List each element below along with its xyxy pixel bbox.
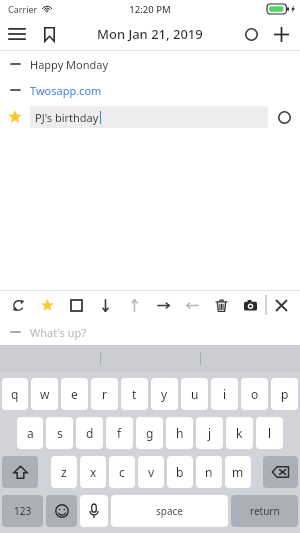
button[interactable]: Emoji <box>46 495 77 527</box>
button[interactable]: o <box>241 378 268 410</box>
button[interactable]: Happy Monday <box>0 51 300 77</box>
button[interactable]: l <box>256 417 283 449</box>
button[interactable]: x <box>80 456 106 488</box>
button[interactable]: c <box>109 456 135 488</box>
staticText: return <box>250 504 280 518</box>
staticText: q <box>11 386 19 402</box>
button[interactable]: Outdent <box>178 291 207 319</box>
staticText: l <box>268 425 272 441</box>
staticText: space <box>156 504 183 518</box>
button[interactable]: Move down <box>91 291 120 319</box>
staticText: PJ's birthday <box>35 110 99 125</box>
staticText: n <box>205 464 213 480</box>
button[interactable]: Close <box>267 291 296 319</box>
staticText: b <box>176 464 184 480</box>
button[interactable]: u <box>181 378 208 410</box>
button[interactable]: Toggle complete <box>268 103 300 131</box>
button[interactable]: r <box>91 378 118 410</box>
button[interactable]: Backspace <box>263 456 298 488</box>
button[interactable]: y <box>151 378 178 410</box>
staticText: t <box>132 386 137 402</box>
button[interactable]: h <box>166 417 193 449</box>
staticText: m <box>232 464 244 480</box>
button[interactable]: Dictate <box>80 495 108 527</box>
button[interactable]: Bookmarks <box>34 19 64 49</box>
button[interactable]: v <box>138 456 164 488</box>
staticText: Twosapp.com <box>30 83 102 98</box>
staticText: Carrier <box>8 3 38 15</box>
button[interactable]: Checkbox <box>62 291 91 319</box>
button[interactable]: Mon Jan 21, 2019 <box>97 25 203 43</box>
staticText: e <box>71 386 78 402</box>
staticText: a <box>27 425 34 441</box>
staticText: o <box>251 386 259 402</box>
button[interactable]: return <box>231 495 298 527</box>
staticText: i <box>223 386 227 402</box>
button[interactable]: n <box>196 456 222 488</box>
staticText: j <box>208 425 212 441</box>
button[interactable]: Shift <box>2 456 38 488</box>
staticText: What's up? <box>30 325 87 340</box>
staticText: h <box>176 425 184 441</box>
button[interactable]: Star <box>33 291 62 319</box>
staticText: s <box>57 425 63 441</box>
button[interactable]: 123 <box>2 495 43 527</box>
button[interactable]: z <box>51 456 77 488</box>
staticText: p <box>281 386 289 402</box>
button[interactable]: i <box>211 378 238 410</box>
button[interactable]: s <box>46 417 73 449</box>
button[interactable]: w <box>31 378 58 410</box>
staticText: r <box>102 386 107 402</box>
staticText: u <box>191 386 199 402</box>
button[interactable]: b <box>167 456 193 488</box>
staticText: y <box>161 386 168 402</box>
button[interactable]: Twosapp.com <box>0 77 300 103</box>
button[interactable]: Move up <box>120 291 149 319</box>
button[interactable]: g <box>136 417 163 449</box>
button[interactable]: Delete <box>207 291 236 319</box>
button[interactable]: k <box>226 417 253 449</box>
button[interactable]: a <box>17 417 43 449</box>
staticText: v <box>148 464 155 480</box>
button[interactable]: PJ's birthday <box>0 103 300 131</box>
staticText: 123 <box>14 504 32 518</box>
staticText: w <box>40 386 50 402</box>
staticText: f <box>117 425 122 441</box>
staticText: g <box>146 425 154 441</box>
staticText: z <box>61 464 67 480</box>
staticText: Happy Monday <box>30 57 109 72</box>
button[interactable]: e <box>61 378 88 410</box>
button[interactable]: m <box>225 456 251 488</box>
staticText: x <box>90 464 97 480</box>
button[interactable]: q <box>2 378 28 410</box>
button[interactable]: f <box>106 417 133 449</box>
staticText: d <box>86 425 94 441</box>
button[interactable]: Status <box>236 19 266 49</box>
button[interactable]: d <box>76 417 103 449</box>
button[interactable]: j <box>196 417 223 449</box>
staticText: 12:20 PM <box>129 3 171 16</box>
button[interactable]: Add note <box>266 19 296 49</box>
button[interactable]: Indent <box>149 291 178 319</box>
button[interactable]: p <box>271 378 298 410</box>
button[interactable]: What's up? <box>0 319 300 345</box>
button[interactable]: t <box>121 378 148 410</box>
button[interactable]: Sync <box>4 291 33 319</box>
button[interactable]: Menu <box>0 18 34 50</box>
button[interactable]: Camera <box>236 291 265 319</box>
staticText: k <box>236 425 243 441</box>
staticText: c <box>119 464 125 480</box>
button[interactable]: space <box>111 495 228 527</box>
